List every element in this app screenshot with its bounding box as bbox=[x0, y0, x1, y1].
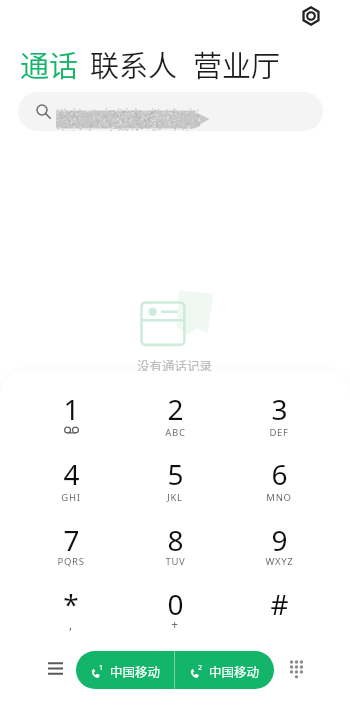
staticText: 9 bbox=[271, 521, 288, 559]
button[interactable]: Menu bbox=[39, 652, 71, 684]
button[interactable]: 联系人 bbox=[90, 43, 178, 85]
staticText: 4 bbox=[63, 455, 80, 493]
staticText: 3 bbox=[271, 390, 288, 428]
button[interactable]: 1 bbox=[76, 651, 174, 689]
button[interactable] bbox=[33, 578, 109, 634]
staticText: # bbox=[270, 585, 289, 623]
staticText: 6 bbox=[271, 455, 288, 493]
button[interactable]: 营业厅 bbox=[193, 43, 281, 85]
button[interactable] bbox=[241, 578, 317, 634]
staticText: 1 bbox=[99, 663, 104, 673]
button[interactable] bbox=[33, 448, 109, 504]
staticText: , bbox=[69, 616, 73, 632]
button[interactable]: 通话 bbox=[20, 43, 79, 85]
staticText: 联系人 bbox=[90, 43, 178, 85]
staticText: ABC bbox=[165, 426, 186, 439]
staticText: MNO bbox=[266, 491, 292, 504]
button[interactable] bbox=[33, 514, 109, 570]
staticText: 0 bbox=[167, 585, 184, 623]
button[interactable] bbox=[137, 514, 213, 570]
button[interactable] bbox=[241, 383, 317, 439]
button[interactable] bbox=[137, 383, 213, 439]
staticText: 中国移动 bbox=[110, 662, 161, 680]
staticText: 2 bbox=[198, 663, 203, 673]
staticText: 1 bbox=[63, 390, 80, 428]
button[interactable]: Settings bbox=[296, 1, 326, 31]
button[interactable] bbox=[241, 448, 317, 504]
button[interactable] bbox=[241, 514, 317, 570]
staticText: GHI bbox=[61, 491, 81, 504]
staticText: 没有通话记录 bbox=[137, 356, 213, 374]
button[interactable]: Dialpad bbox=[280, 652, 312, 684]
staticText: 8 bbox=[167, 521, 184, 559]
staticText: 7 bbox=[63, 521, 80, 559]
button[interactable] bbox=[137, 448, 213, 504]
button[interactable] bbox=[137, 578, 213, 634]
button[interactable] bbox=[18, 92, 323, 131]
staticText: PQRS bbox=[57, 555, 85, 568]
button[interactable] bbox=[33, 383, 109, 439]
staticText: WXYZ bbox=[265, 555, 294, 568]
staticText: 2 bbox=[167, 390, 184, 428]
staticText: 通话 bbox=[20, 43, 79, 85]
staticText: * bbox=[63, 585, 79, 623]
button[interactable]: 2 bbox=[175, 651, 274, 689]
staticText: JKL bbox=[167, 491, 183, 504]
staticText: + bbox=[171, 616, 179, 632]
staticText: TUV bbox=[165, 555, 186, 568]
staticText: 营业厅 bbox=[193, 43, 281, 85]
staticText: 5 bbox=[167, 455, 184, 493]
staticText: 中国移动 bbox=[209, 662, 260, 680]
staticText: DEF bbox=[269, 426, 289, 439]
